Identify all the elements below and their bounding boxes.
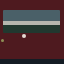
button[interactable] (3, 10, 60, 33)
button[interactable]: Add (22, 34, 26, 38)
